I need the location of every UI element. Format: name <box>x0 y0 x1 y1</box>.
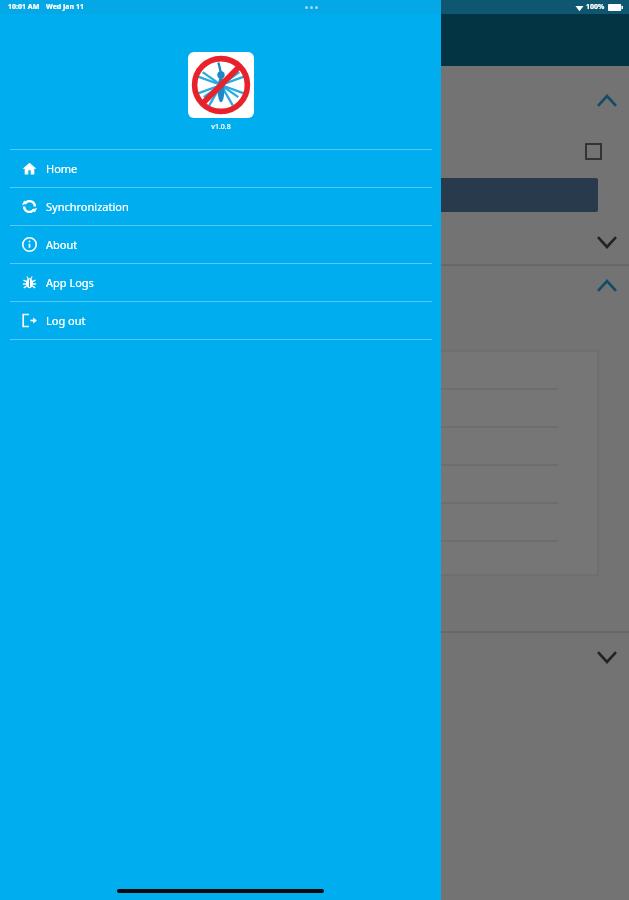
staticText: Home <box>46 161 78 176</box>
staticText: 100% <box>586 2 605 12</box>
button[interactable]: App Logs <box>0 264 441 301</box>
staticText: 10:01 AM <box>8 2 40 12</box>
button[interactable]: Synchronization <box>0 188 441 225</box>
staticText: About <box>46 237 78 252</box>
button[interactable]: About <box>0 226 441 263</box>
button[interactable]: Home <box>0 150 441 187</box>
staticText: Wed Jan 11 <box>46 2 84 12</box>
staticText: Log out <box>46 313 86 328</box>
staticText: Synchronization <box>46 199 129 214</box>
staticText: v1.0.8 <box>211 122 231 132</box>
button[interactable]: Log out <box>0 302 441 339</box>
staticText: App Logs <box>46 275 94 290</box>
